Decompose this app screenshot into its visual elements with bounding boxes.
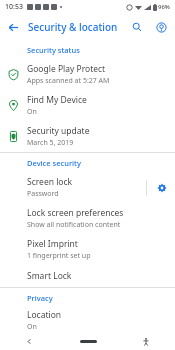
button[interactable]: Smart Lock (0, 265, 175, 287)
staticText: Screen lock (27, 176, 73, 188)
staticText: 1 fingerprint set up (27, 251, 91, 261)
staticText: Google Play Protect (27, 63, 106, 75)
staticText: Security & location (28, 20, 118, 34)
staticText: On (27, 322, 37, 332)
staticText: Apps scanned at 5:27 AM (27, 76, 110, 86)
button[interactable]: Help (149, 15, 173, 39)
button[interactable]: Screen lock settings (149, 172, 175, 203)
staticText: Smart Lock (27, 270, 72, 282)
staticText: Lock screen preferences (27, 207, 124, 219)
button[interactable]: Search (125, 15, 149, 39)
staticText: March 5, 2019 (27, 138, 74, 148)
staticText: Find My Device (27, 94, 87, 106)
button[interactable]: Google Play Protect (0, 59, 175, 90)
button[interactable]: Back (0, 333, 59, 350)
staticText: Pixel Imprint (27, 238, 78, 250)
button[interactable]: Back (0, 14, 26, 40)
button[interactable]: Home (59, 333, 117, 350)
staticText: Privacy (27, 293, 53, 303)
staticText: Security status (27, 45, 80, 55)
staticText: 10:53 (5, 2, 23, 12)
button[interactable]: Find My Device (0, 90, 175, 121)
button[interactable]: Pixel Imprint (0, 234, 175, 265)
button[interactable]: Security update (0, 121, 175, 152)
staticText: 96% (158, 3, 170, 11)
button[interactable]: Accessibility (117, 333, 175, 350)
button[interactable]: Screen lock (0, 172, 175, 203)
staticText: Location (27, 309, 62, 321)
staticText: Show all notification content (27, 220, 121, 230)
staticText: Password (27, 189, 59, 199)
staticText: Security update (27, 125, 90, 137)
button[interactable]: Location (0, 307, 175, 333)
button[interactable]: Lock screen preferences (0, 203, 175, 234)
staticText: On (27, 107, 37, 117)
staticText: Device security (27, 158, 81, 168)
